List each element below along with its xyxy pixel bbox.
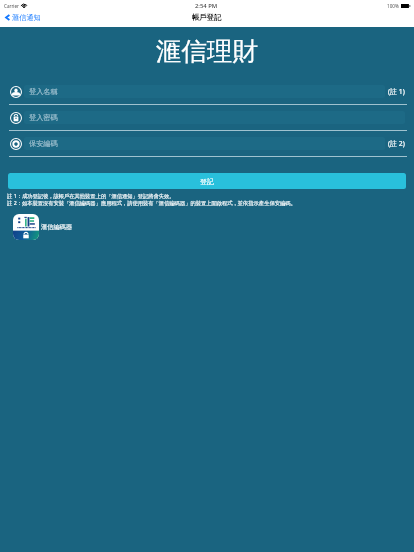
staticText: 登入名稱 (29, 87, 58, 96)
staticText: (註 1) (388, 87, 405, 96)
button[interactable]: 滙信編碼器 (13, 214, 72, 240)
button[interactable]: 登記 (8, 173, 406, 189)
staticText: Carrier (4, 3, 19, 9)
staticText: 帳戶登記 (192, 13, 222, 22)
staticText: (註 2) (388, 139, 405, 148)
button[interactable]: 登入密碼 (0, 105, 414, 131)
staticText: 滙信理財 (0, 35, 414, 67)
staticText: 2:54 PM (195, 2, 218, 10)
staticText: 滙信通知 (12, 13, 41, 22)
staticText: 註 2：如本裝置沒有安裝「滙信編碼器」應用程式，請使用裝有「滙信編碼器」的裝置上… (7, 199, 296, 206)
button[interactable]: 保安編碼 (0, 131, 414, 157)
staticText: 保安編碼 (29, 139, 58, 148)
button[interactable]: 滙信通知 (3, 12, 43, 23)
staticText: 登入密碼 (29, 113, 58, 122)
staticText: 100% (387, 3, 399, 9)
staticText: 滙信編碼器 (41, 223, 72, 231)
staticText: 登記 (200, 177, 214, 186)
staticText: 註 1：成功登記後，該帳戶在其他裝置上的「滙信通知」登記將會失效。 (7, 192, 175, 199)
button[interactable]: 登入名稱 (0, 79, 414, 105)
